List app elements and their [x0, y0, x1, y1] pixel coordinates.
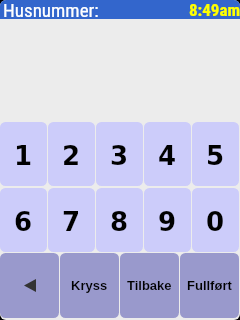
staticText: Husnummer:	[3, 0, 99, 18]
button[interactable]: 9	[144, 188, 191, 252]
staticText: Kryss	[71, 278, 108, 293]
staticText: 6	[14, 207, 33, 237]
button[interactable]: 6	[0, 188, 47, 252]
button[interactable]: Back	[0, 253, 59, 318]
staticText: 4	[158, 141, 177, 171]
button[interactable]: 4	[144, 122, 191, 186]
button[interactable]: Tilbake	[120, 253, 179, 318]
staticText: 8	[110, 207, 129, 237]
staticText: 5	[206, 141, 225, 171]
button[interactable]: 3	[96, 122, 143, 186]
staticText: Tilbake	[127, 278, 172, 293]
button[interactable]: 8	[96, 188, 143, 252]
button[interactable]: 1	[0, 122, 47, 186]
button[interactable]: 7	[48, 188, 95, 252]
staticText: 9	[158, 207, 177, 237]
staticText: Fullført	[187, 278, 232, 293]
staticText: 3	[110, 141, 129, 171]
staticText: 2	[62, 141, 81, 171]
button[interactable]: 0	[192, 188, 239, 252]
button[interactable]: Husnummer:	[0, 0, 240, 19]
button[interactable]: Fullført	[180, 253, 239, 318]
staticText: 7	[62, 207, 81, 237]
button[interactable]: 5	[192, 122, 239, 186]
staticText: 0	[206, 207, 225, 237]
staticText: 8:49am	[189, 0, 240, 19]
staticText: 1	[14, 141, 33, 171]
button[interactable]: Kryss	[60, 253, 119, 318]
button[interactable]: 2	[48, 122, 95, 186]
